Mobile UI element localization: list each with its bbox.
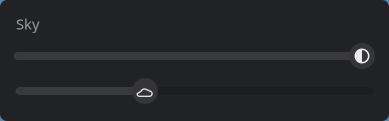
button[interactable]: Cloud cover xyxy=(15,78,373,104)
staticText: Sky xyxy=(16,14,39,33)
button[interactable]: Brightness xyxy=(15,43,373,69)
